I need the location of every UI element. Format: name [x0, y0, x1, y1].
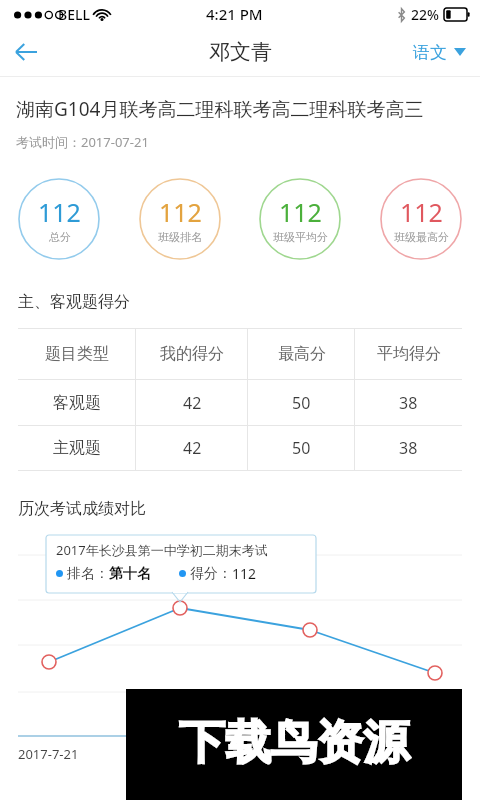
staticText: 最高分	[278, 344, 326, 364]
staticText: 我的得分	[160, 344, 224, 364]
staticText: 38	[399, 392, 418, 414]
staticText: 22%	[411, 5, 439, 24]
staticText: 第十名	[109, 565, 151, 583]
staticText: 总分	[49, 230, 71, 244]
staticText: 112	[400, 195, 443, 229]
button[interactable]: 语文	[399, 28, 480, 76]
staticText: 112	[279, 195, 322, 229]
staticText: 2017-7-21	[18, 745, 79, 763]
staticText: 历次考试成绩对比	[18, 499, 146, 519]
staticText: 考试时间：2017-07-21	[16, 133, 149, 151]
staticText: 42	[183, 437, 202, 459]
staticText: 42	[183, 392, 202, 414]
staticText: 4:21 PM	[206, 4, 263, 24]
staticText: 112	[159, 195, 202, 229]
staticText: 湖南G104月联考高二理科联考高二理科联考高三	[16, 96, 424, 122]
button[interactable]: 112	[380, 178, 462, 260]
staticText: 排名：	[67, 565, 109, 583]
staticText: 题目类型	[45, 344, 109, 364]
staticText: 下载鸟资源	[179, 714, 409, 772]
staticText: 客观题	[53, 393, 101, 413]
staticText: 50	[292, 392, 311, 414]
button[interactable]: 112	[18, 178, 100, 260]
staticText: 112	[38, 195, 81, 229]
staticText: 班级排名	[158, 230, 202, 244]
staticText: 邓文青	[209, 39, 272, 65]
staticText: 班级平均分	[273, 230, 328, 244]
staticText: 主观题	[53, 438, 101, 458]
button[interactable]: Back	[0, 28, 52, 76]
staticText: BELL	[58, 5, 90, 24]
staticText: 38	[399, 437, 418, 459]
staticText: 主、客观题得分	[18, 292, 130, 312]
staticText: 2017年长沙县第一中学初二期末考试	[56, 541, 268, 559]
staticText: 平均得分	[377, 344, 441, 364]
button[interactable]: 112	[139, 178, 221, 260]
staticText: 语文	[413, 42, 447, 63]
button[interactable]: 112	[259, 178, 341, 260]
staticText: 班级最高分	[394, 230, 449, 244]
staticText: 112	[232, 564, 257, 583]
staticText: 50	[292, 437, 311, 459]
staticText: 得分：	[190, 565, 232, 583]
